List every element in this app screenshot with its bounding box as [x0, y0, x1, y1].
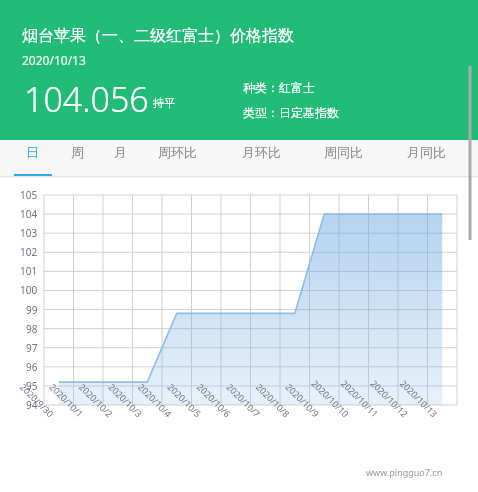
staticText: 周环比	[158, 144, 197, 160]
staticText: 月环比	[242, 144, 281, 160]
staticText: 104.056	[24, 76, 149, 122]
button[interactable]: 月	[107, 144, 133, 176]
staticText: 周同比	[324, 144, 363, 160]
staticText: 持平	[153, 96, 175, 110]
staticText: 2020/10/13	[22, 52, 86, 68]
staticText: 烟台苹果（一、二级红富士）价格指数	[22, 26, 294, 46]
staticText: 类型：日定基指数	[243, 105, 339, 120]
button[interactable]: 月环比	[234, 144, 288, 176]
staticText: 周	[71, 144, 84, 160]
staticText: 日	[26, 144, 39, 160]
button[interactable]: 月同比	[399, 144, 453, 176]
staticText: 月同比	[407, 144, 446, 160]
button[interactable]: 周同比	[316, 144, 370, 176]
button[interactable]: 日	[19, 144, 45, 176]
button[interactable]: 周	[64, 144, 90, 176]
button[interactable]: 周环比	[150, 144, 204, 176]
staticText: 种类：红富士	[243, 80, 315, 95]
staticText: 月	[114, 144, 127, 160]
